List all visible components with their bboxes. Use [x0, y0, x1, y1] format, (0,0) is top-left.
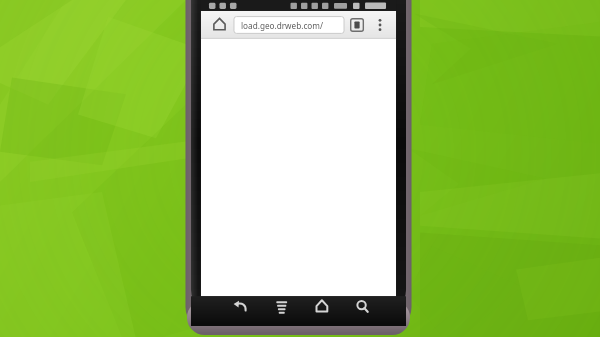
button[interactable]: More options	[373, 11, 396, 39]
button[interactable]: Home	[302, 296, 342, 316]
staticText: load.geo.drweb.com/	[241, 20, 323, 31]
button[interactable]: Home	[201, 11, 234, 39]
button[interactable]: load.geo.drweb.com/	[234, 11, 350, 39]
button[interactable]: Tabs	[350, 11, 373, 39]
button[interactable]: Back	[219, 296, 259, 316]
button[interactable]: Menu	[262, 296, 302, 316]
button[interactable]: Search	[342, 296, 382, 316]
